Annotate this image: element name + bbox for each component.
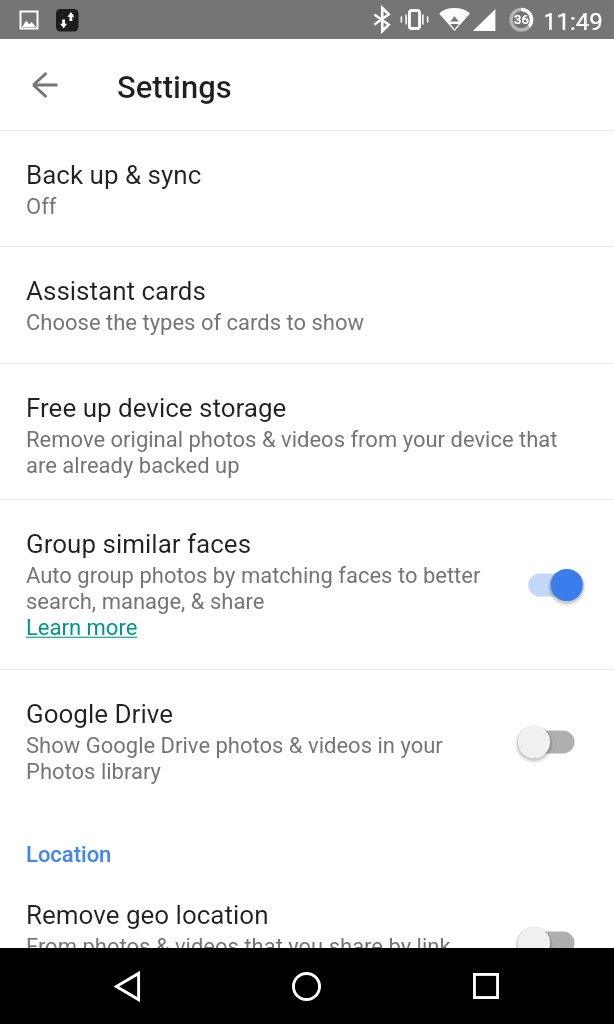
- button[interactable]: Back: [18, 58, 72, 112]
- button[interactable]: Toggle on: [518, 563, 614, 607]
- staticText: Settings: [117, 69, 232, 105]
- staticText: Assistant cards: [26, 276, 206, 306]
- staticText: Show Google Drive photos & videos in you…: [26, 733, 504, 785]
- staticText: Free up device storage: [26, 393, 287, 423]
- button[interactable]: Back: [87, 948, 168, 1024]
- staticText: 11:49: [543, 8, 603, 36]
- button[interactable]: Free up device storage: [0, 364, 614, 499]
- staticText: Google Drive: [26, 699, 173, 729]
- staticText: Group similar faces: [26, 529, 252, 559]
- button[interactable]: Google Drive: [0, 670, 614, 812]
- staticText: Back up & sync: [26, 160, 202, 190]
- button[interactable]: Remove geo location: [0, 871, 614, 948]
- button[interactable]: Recent apps: [445, 948, 526, 1024]
- staticText: Off: [26, 194, 57, 220]
- button[interactable]: Home: [266, 948, 347, 1024]
- button[interactable]: Learn more: [26, 615, 138, 641]
- button[interactable]: Toggle off: [518, 720, 614, 764]
- button[interactable]: Toggle off: [518, 921, 614, 948]
- staticText: Choose the types of cards to show: [26, 310, 365, 336]
- staticText: Remove geo location: [26, 900, 269, 930]
- staticText: Location: [26, 842, 112, 868]
- staticText: Remove original photos & videos from you…: [26, 427, 571, 479]
- staticText: Auto group photos by matching faces to b…: [26, 563, 504, 615]
- button[interactable]: Group similar faces: [0, 500, 614, 669]
- staticText: From photos & videos that you share by l…: [26, 934, 451, 948]
- button[interactable]: Back up & sync: [0, 131, 614, 246]
- staticText: 36: [514, 12, 529, 27]
- button[interactable]: Assistant cards: [0, 247, 614, 363]
